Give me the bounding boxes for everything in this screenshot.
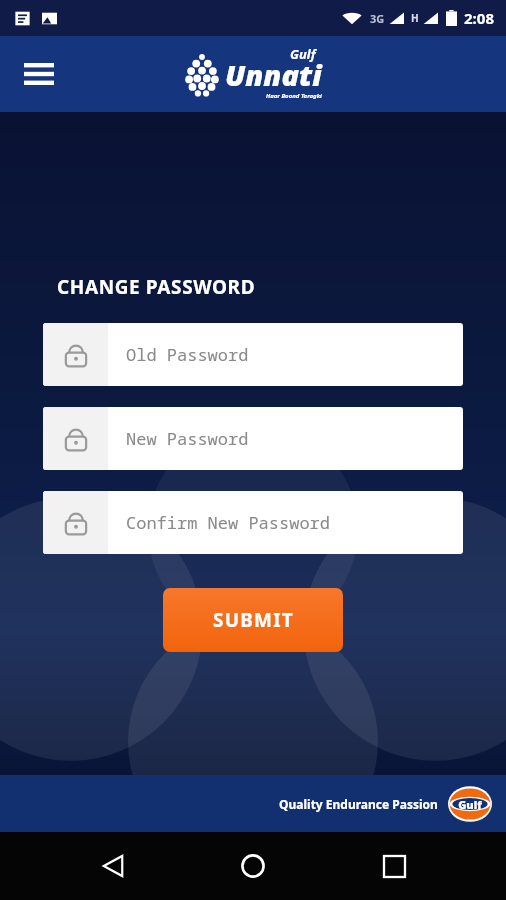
staticText: Haar Boond Taragki [266, 92, 322, 100]
staticText: 3G [370, 11, 385, 26]
button[interactable]: Recent apps [366, 838, 422, 894]
staticText: Gulf [290, 45, 316, 63]
staticText: 2:08 [464, 8, 494, 28]
staticText: New Password [126, 427, 249, 450]
staticText: Gulf [458, 797, 482, 812]
button[interactable]: Confirm New Password [43, 491, 463, 554]
button[interactable]: Old Password [43, 323, 463, 386]
staticText: H [411, 11, 419, 25]
staticText: SUBMIT [213, 607, 294, 633]
button[interactable]: Home [225, 838, 281, 894]
staticText: Confirm New Password [126, 511, 330, 534]
staticText: Quality Endurance Passion [279, 796, 438, 812]
staticText: CHANGE PASSWORD [57, 274, 256, 300]
button[interactable]: SUBMIT [163, 588, 343, 652]
button[interactable]: New Password [43, 407, 463, 470]
button[interactable]: Back [85, 838, 141, 894]
staticText: Old Password [126, 343, 249, 366]
button[interactable]: Open navigation menu [16, 51, 62, 97]
staticText: Unnati [225, 55, 322, 94]
